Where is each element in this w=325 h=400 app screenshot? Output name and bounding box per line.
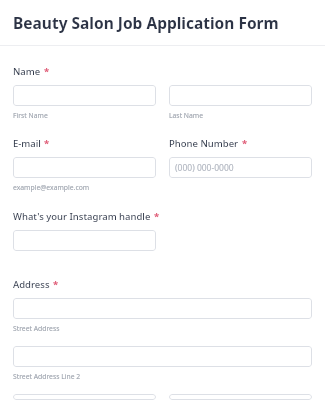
button[interactable]: Last Name [169,85,312,106]
staticText: * [44,65,50,78]
button[interactable]: State / Province [169,394,312,400]
staticText: Name [13,65,41,78]
staticText: * [242,137,248,150]
staticText: Street Address [13,324,60,333]
button[interactable]: E-mail [13,157,156,178]
staticText: * [44,137,50,150]
staticText: Phone Number [169,137,239,150]
staticText: Beauty Salon Job Application Form [13,12,279,33]
staticText: Last Name [169,111,204,120]
button[interactable]: Instagram handle [13,230,156,251]
staticText: Address [13,278,50,291]
staticText: * [154,210,160,223]
button[interactable]: Street Address [13,298,312,319]
staticText: example@example.com [13,183,90,192]
button[interactable]: First Name [13,85,156,106]
staticText: First Name [13,111,48,120]
button[interactable]: Street Address Line 2 [13,346,312,367]
staticText: E-mail [13,137,41,150]
button[interactable]: Phone Number [169,157,312,178]
button[interactable]: City [13,394,156,400]
staticText: * [53,278,59,291]
staticText: Street Address Line 2 [13,372,81,381]
staticText: (000) 000-0000 [175,162,234,174]
staticText: What's your Instagram handle [13,210,151,223]
